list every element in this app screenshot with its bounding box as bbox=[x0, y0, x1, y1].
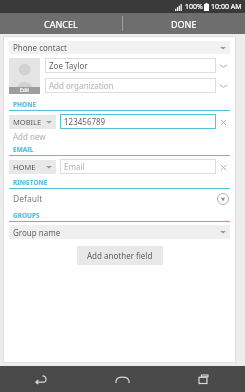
staticText: DONE bbox=[171, 18, 197, 30]
button[interactable]: Add another field bbox=[77, 246, 163, 265]
button[interactable]: CANCEL bbox=[0, 13, 122, 34]
button[interactable]: MOBILE bbox=[9, 115, 56, 129]
button[interactable]: Delete bbox=[216, 160, 230, 174]
staticText: Email bbox=[64, 161, 85, 172]
button[interactable]: HOME bbox=[9, 160, 56, 174]
button[interactable]: Home bbox=[81, 366, 163, 392]
staticText: EMAIL bbox=[13, 145, 34, 154]
button[interactable]: Delete bbox=[216, 115, 230, 129]
staticText: GROUPS bbox=[13, 211, 40, 220]
button[interactable]: Group name bbox=[9, 225, 230, 239]
staticText: 100% bbox=[185, 2, 203, 12]
staticText: PHONE bbox=[13, 100, 37, 109]
button[interactable]: Add organization bbox=[45, 78, 216, 93]
staticText: 123456789 bbox=[64, 116, 106, 127]
button[interactable]: Recents bbox=[163, 366, 245, 392]
staticText: MOBILE bbox=[13, 117, 42, 127]
button[interactable]: 123456789 bbox=[60, 114, 216, 129]
button[interactable]: Add new bbox=[13, 131, 46, 142]
staticText: Add organization bbox=[49, 80, 114, 91]
other: Choose ringtone bbox=[216, 192, 230, 206]
staticText: Default bbox=[13, 193, 43, 205]
button[interactable]: Phone contact bbox=[9, 41, 230, 54]
button[interactable]: DONE bbox=[123, 13, 245, 34]
staticText: Edit bbox=[20, 87, 29, 94]
button[interactable]: Expand bbox=[216, 59, 230, 73]
button[interactable]: Expand bbox=[216, 79, 230, 93]
button[interactable]: Edit photo bbox=[9, 58, 40, 94]
button[interactable]: Default bbox=[9, 192, 230, 206]
button[interactable]: Email bbox=[60, 159, 216, 174]
staticText: Phone contact bbox=[13, 42, 67, 53]
staticText: 10:00 AM bbox=[211, 2, 242, 12]
staticText: Zoe Taylor bbox=[49, 60, 88, 71]
staticText: HOME bbox=[13, 162, 36, 172]
staticText: CANCEL bbox=[44, 18, 78, 30]
button[interactable]: Back bbox=[0, 366, 81, 392]
staticText: Group name bbox=[13, 227, 61, 238]
staticText: Add another field bbox=[87, 250, 153, 261]
button[interactable]: Zoe Taylor bbox=[45, 58, 216, 73]
staticText: RINGTONE bbox=[13, 178, 48, 187]
